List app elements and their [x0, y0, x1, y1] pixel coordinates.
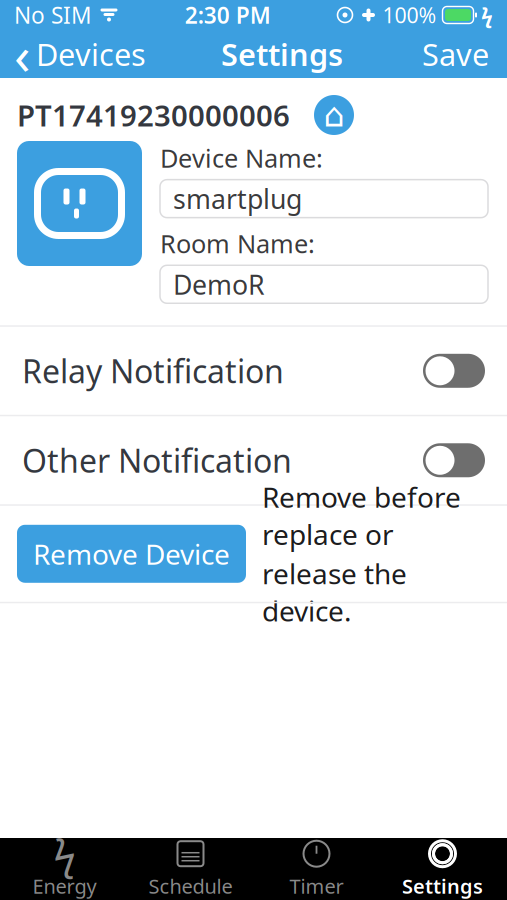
staticText: Settings: [221, 34, 343, 74]
staticText: Settings: [402, 873, 483, 899]
staticText: Other Notification: [22, 439, 292, 481]
staticText: Device Name:: [160, 141, 323, 175]
button[interactable]: Other Notification: [423, 443, 485, 477]
staticText: release the device.: [262, 555, 407, 629]
staticText: DemoR: [173, 267, 265, 302]
staticText: ‹: [14, 19, 31, 89]
staticText: No SIM: [14, 0, 92, 30]
button[interactable]: Home: [290, 95, 354, 135]
staticText: 100%: [382, 1, 436, 29]
staticText: 2:30 PM: [185, 0, 271, 30]
staticText: ϟ: [481, 1, 493, 29]
staticText: Timer: [289, 873, 343, 899]
button[interactable]: Settings: [379, 838, 505, 900]
staticText: Relay Notification: [22, 349, 284, 392]
button[interactable]: ‹: [0, 30, 160, 78]
staticText: Remove before replace or: [262, 478, 461, 553]
button[interactable]: Relay Notification: [423, 354, 485, 388]
staticText: ⌂: [323, 96, 344, 134]
staticText: smartplug: [173, 181, 302, 216]
button[interactable]: Save: [404, 30, 507, 78]
button[interactable]: Schedule: [127, 838, 253, 900]
staticText: PT17419230000006: [17, 95, 290, 134]
button[interactable]: ϟ: [1, 838, 127, 900]
staticText: Devices: [36, 34, 146, 74]
staticText: Energy: [32, 873, 96, 899]
staticText: Remove Device: [33, 535, 230, 572]
button[interactable]: Timer: [253, 838, 379, 900]
button[interactable]: Remove Device: [17, 525, 246, 583]
staticText: Room Name:: [160, 227, 315, 260]
staticText: ϟ: [53, 827, 75, 880]
staticText: Schedule: [148, 873, 232, 899]
staticText: Save: [422, 34, 489, 74]
